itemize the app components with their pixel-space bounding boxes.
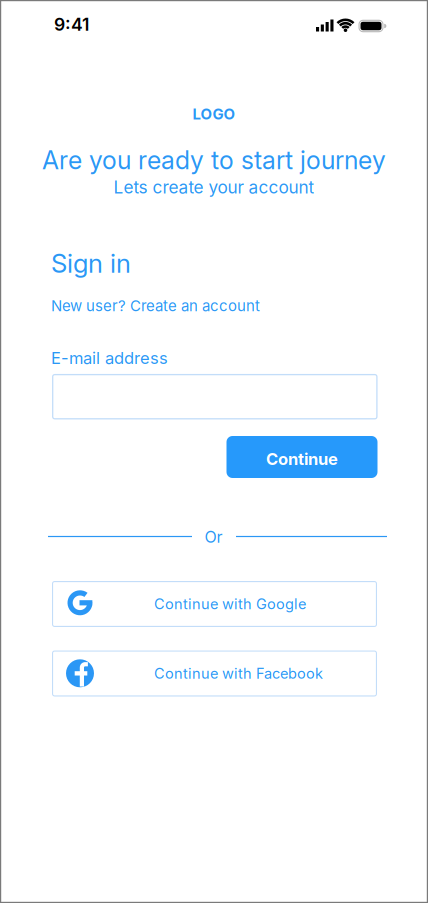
staticText: Or — [204, 527, 222, 547]
button[interactable]: Continue with Facebook — [52, 650, 377, 696]
button[interactable]: New user? Create an account — [51, 297, 260, 315]
staticText: LOGO — [192, 105, 235, 123]
staticText: New user? Create an account — [51, 297, 260, 315]
staticText: E-mail address — [51, 348, 168, 368]
staticText: Sign in — [51, 248, 131, 279]
staticText: Continue with Facebook — [154, 665, 323, 682]
button[interactable]: Continue — [226, 436, 377, 478]
staticText: Continue with Google — [154, 595, 306, 613]
staticText: 9:41 — [54, 14, 89, 35]
staticText: Lets create your account — [113, 177, 314, 198]
staticText: Are you ready to start journey — [42, 145, 386, 175]
staticText: Continue — [266, 449, 338, 469]
button[interactable]: Continue with Google — [52, 581, 377, 627]
